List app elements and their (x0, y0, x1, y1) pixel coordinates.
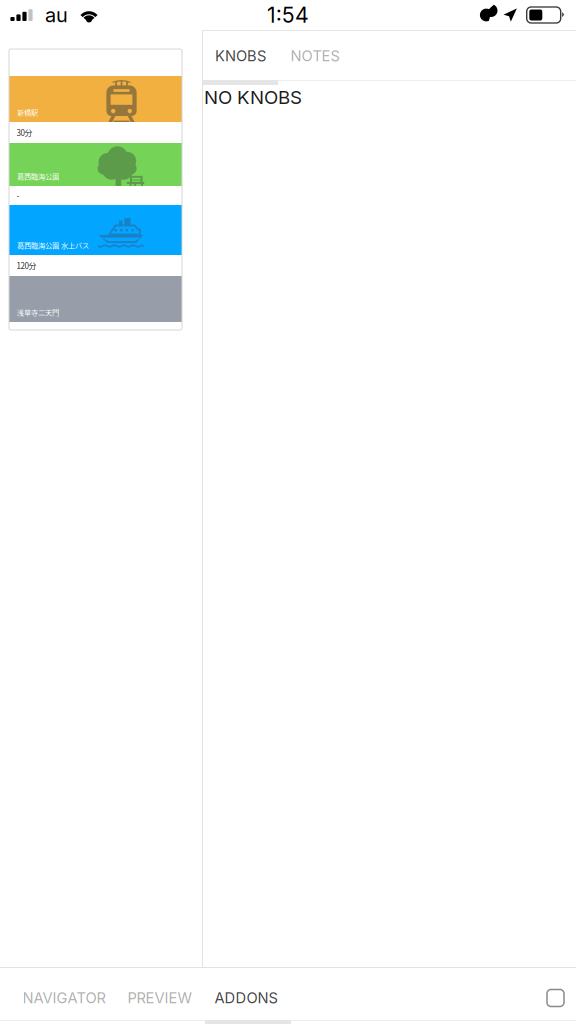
button[interactable]: NOTES (278, 31, 352, 81)
staticText: 120分 (16, 260, 36, 271)
button[interactable]: 葛西臨海公園 (9, 143, 182, 186)
staticText: ADDONS (214, 989, 277, 1007)
button[interactable]: 30分 (9, 122, 182, 143)
button[interactable]: 新橋駅 (9, 76, 182, 122)
button[interactable]: PREVIEW (116, 972, 203, 1024)
staticText: 葛西臨海公園 (17, 171, 59, 181)
button[interactable]: - (9, 186, 182, 205)
button[interactable]: Toggle fullscreen (535, 972, 576, 1024)
staticText: 1:54 (267, 2, 309, 28)
button[interactable]: ADDONS (203, 972, 289, 1024)
staticText: 浅草寺二天門 (17, 307, 59, 317)
button[interactable]: 浅草寺二天門 (9, 276, 182, 322)
staticText: NO KNOBS (204, 86, 302, 109)
staticText: 葛西臨海公園 水上バス (17, 240, 89, 250)
staticText: NAVIGATOR (22, 989, 105, 1007)
staticText: 新橋駅 (17, 107, 38, 117)
staticText: 30分 (16, 127, 32, 138)
button[interactable]: 葛西臨海公園 水上バス (9, 205, 182, 255)
button[interactable]: KNOBS (203, 31, 278, 81)
button[interactable]: 120分 (9, 255, 182, 276)
staticText: NOTES (290, 47, 339, 65)
button[interactable]: NAVIGATOR (12, 972, 116, 1024)
staticText: - (16, 190, 19, 201)
staticText: au (45, 3, 68, 27)
staticText: KNOBS (215, 47, 266, 65)
staticText: PREVIEW (127, 989, 191, 1007)
